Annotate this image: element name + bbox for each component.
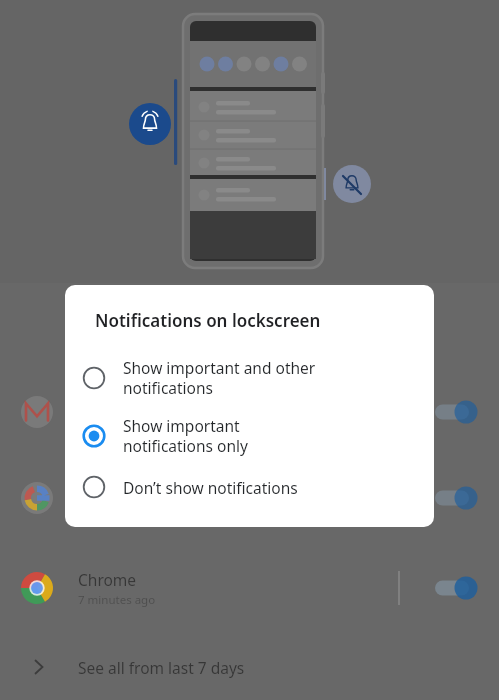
staticText: Chrome <box>78 569 137 590</box>
button[interactable]: Show important and other notifications <box>65 349 434 407</box>
staticText: Show important notifications only <box>123 415 248 457</box>
staticText: Don’t show notifications <box>123 477 298 498</box>
button[interactable]: See all from last 7 days <box>0 643 499 691</box>
button[interactable]: Don’t show notifications <box>65 465 434 509</box>
button[interactable]: Show important notifications only <box>65 407 434 465</box>
staticText: Notifications on lockscreen <box>95 309 321 332</box>
button[interactable]: Chrome <box>0 561 499 615</box>
staticText: Show important and other notifications <box>123 357 316 399</box>
staticText: 7 minutes ago <box>78 592 156 608</box>
staticText: See all from last 7 days <box>78 657 245 678</box>
